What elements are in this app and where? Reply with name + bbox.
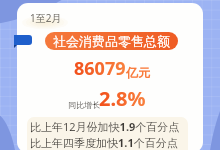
staticText: 86079 xyxy=(74,56,126,81)
staticText: 2.8% xyxy=(99,85,146,112)
staticText: 亿元 xyxy=(126,65,150,80)
staticText: 比上年四季度加快1.1个百分点 xyxy=(30,135,178,150)
staticText: 同比增长 xyxy=(68,100,100,110)
staticText: 比上年12月份加快1.9个百分点 xyxy=(30,119,180,134)
staticText: 1至2月 xyxy=(30,11,62,25)
staticText: 社会消费品零售总额 xyxy=(53,33,170,49)
